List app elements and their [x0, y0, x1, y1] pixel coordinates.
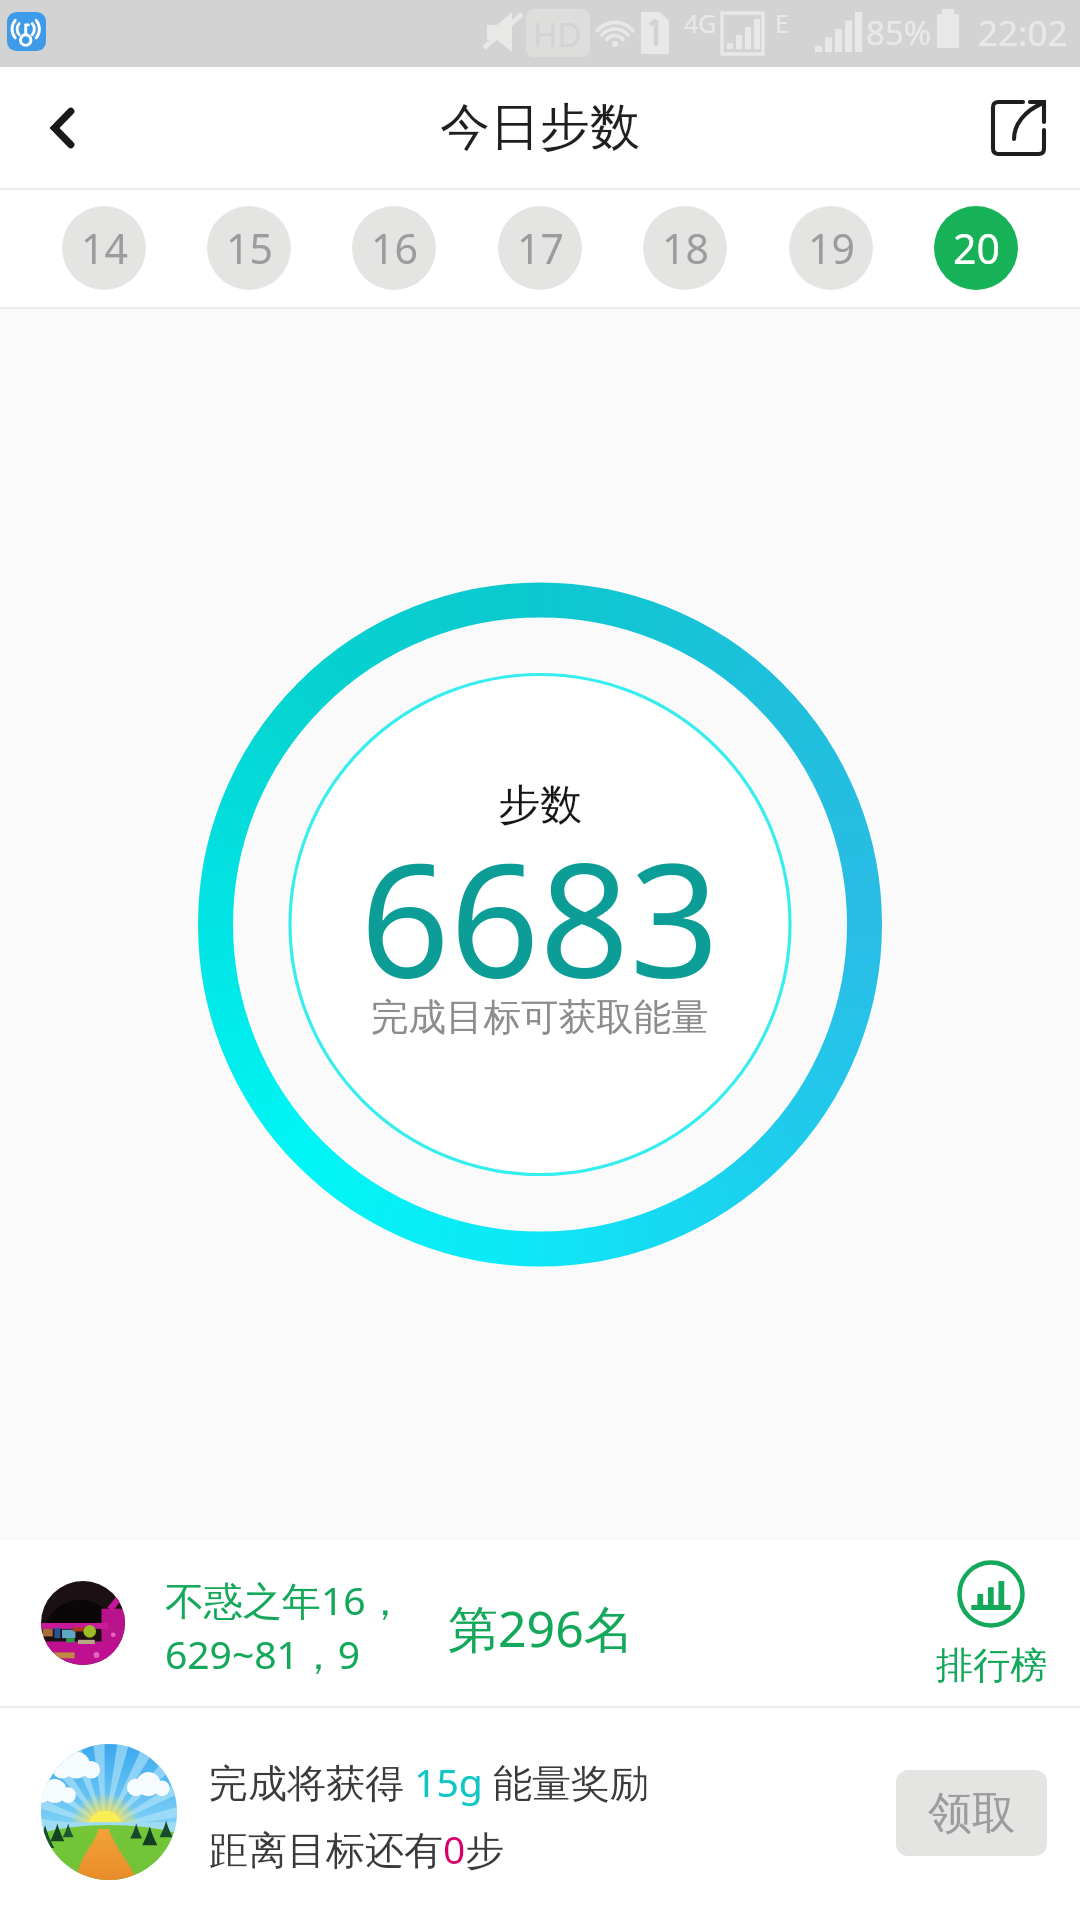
- staticText: 完成将获得 15g 能量奖励: [209, 1755, 649, 1808]
- staticText: 17: [517, 220, 564, 276]
- staticText: 步数: [498, 779, 582, 832]
- button[interactable]: 17: [498, 206, 582, 290]
- staticText: 16: [371, 220, 418, 276]
- staticText: 85%: [866, 10, 932, 55]
- staticText: 20: [953, 220, 1000, 276]
- button[interactable]: 18: [643, 206, 727, 290]
- button[interactable]: Share: [958, 67, 1080, 188]
- staticText: 今日步数: [440, 96, 640, 159]
- staticText: 完成目标可获取能量: [371, 994, 709, 1041]
- button[interactable]: 15: [207, 206, 291, 290]
- button[interactable]: Profile avatar: [0, 1540, 1080, 1706]
- staticText: 距离目标还有0步: [209, 1822, 505, 1875]
- staticText: 19: [808, 220, 855, 276]
- button[interactable]: 领取: [896, 1770, 1047, 1856]
- staticText: 15: [226, 220, 273, 276]
- staticText: 排行榜: [936, 1642, 1047, 1689]
- staticText: E: [775, 6, 789, 40]
- button[interactable]: 19: [789, 206, 873, 290]
- button[interactable]: 20: [934, 206, 1018, 290]
- staticText: 4G: [684, 6, 717, 40]
- button[interactable]: Leaderboard: [926, 1560, 1056, 1689]
- button[interactable]: 16: [352, 206, 436, 290]
- staticText: HD: [533, 12, 582, 57]
- staticText: 6683: [360, 809, 720, 1023]
- staticText: 不惑之年16， 629~81，9: [165, 1573, 405, 1680]
- button[interactable]: Profile avatar: [41, 1581, 125, 1665]
- staticText: 第296名: [448, 1594, 634, 1662]
- staticText: 22:02: [978, 9, 1068, 57]
- staticText: 14: [81, 220, 128, 276]
- button[interactable]: Back: [0, 67, 124, 188]
- button[interactable]: 14: [62, 206, 146, 290]
- staticText: 18: [662, 220, 709, 276]
- staticText: 领取: [928, 1786, 1016, 1841]
